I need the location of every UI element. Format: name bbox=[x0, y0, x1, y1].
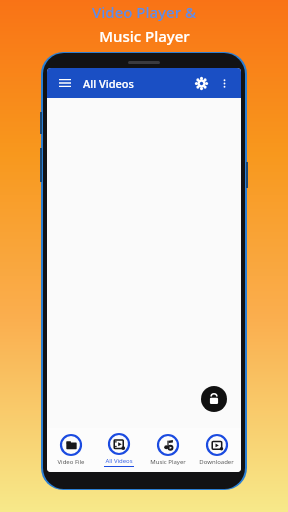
button[interactable]: Downloader bbox=[192, 428, 241, 472]
button[interactable]: Music Player bbox=[143, 428, 192, 472]
staticText: Downloader bbox=[199, 458, 234, 466]
button[interactable]: Video File bbox=[47, 428, 95, 472]
button[interactable]: All Videos bbox=[95, 428, 143, 472]
button[interactable]: Settings bbox=[192, 74, 210, 92]
staticText: Music Player bbox=[150, 458, 186, 466]
staticText: Music Player bbox=[99, 26, 190, 46]
staticText: Video Player & bbox=[92, 2, 196, 22]
staticText: All Videos bbox=[105, 457, 133, 465]
button[interactable]: Lock bbox=[201, 386, 227, 412]
staticText: Video File bbox=[57, 458, 85, 466]
staticText: All Videos bbox=[83, 76, 134, 91]
button[interactable]: Menu bbox=[56, 74, 74, 92]
button[interactable]: More options bbox=[216, 75, 232, 91]
